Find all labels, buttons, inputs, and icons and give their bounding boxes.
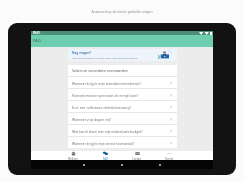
staticText: FAQ <box>33 38 41 44</box>
staticText: Contact <box>132 157 142 160</box>
button[interactable]: Wanneer vrije dagen vrij? <box>68 113 177 124</box>
button[interactable]: FAQ <box>89 151 121 160</box>
staticText: Overig <box>165 157 174 160</box>
staticText: Salaris en secundaire voorwaarden <box>72 68 128 73</box>
staticText: Antwoord op de meest gestelde vragen <box>91 9 153 13</box>
staticText: Wanneer krijg ik mijn arbeidsovereenkoms… <box>72 81 169 85</box>
button[interactable]: Is er een collectieve ziektekostenzorg? <box>68 101 177 112</box>
button[interactable]: Contact <box>121 151 153 160</box>
button[interactable]: Wanneer krijg ik mijn arbeidsovereenkoms… <box>68 77 177 88</box>
staticText: Veel antwoorden op vragen over jouw nieu… <box>72 56 138 59</box>
staticText: 09:41 <box>33 31 40 35</box>
button[interactable]: Wat kan ik doen met mijn individuele bud… <box>68 125 177 136</box>
button[interactable]: Nog vragen? <box>68 49 177 61</box>
staticText: Is er een collectieve ziektekostenzorg? <box>72 105 169 109</box>
staticText: Wanneer krijg ik mijn eerste loonstrook? <box>72 141 169 145</box>
button[interactable]: Welkom <box>57 151 89 160</box>
button[interactable]: Wanneer krijg ik mijn eerste loonstrook? <box>68 137 177 148</box>
staticText: Welkom <box>68 157 78 160</box>
staticText: Wat kan ik doen met mijn individuele bud… <box>72 129 169 133</box>
button[interactable]: Hoeveel minuten pensioen zit in mijn loo… <box>68 89 177 100</box>
staticText: Nog vragen? <box>72 51 91 55</box>
button[interactable]: Overig <box>153 151 185 160</box>
staticText: Wanneer vrije dagen vrij? <box>72 117 169 121</box>
staticText: FAQ <box>103 157 108 160</box>
staticText: Hoeveel minuten pensioen zit in mijn loo… <box>72 93 169 97</box>
